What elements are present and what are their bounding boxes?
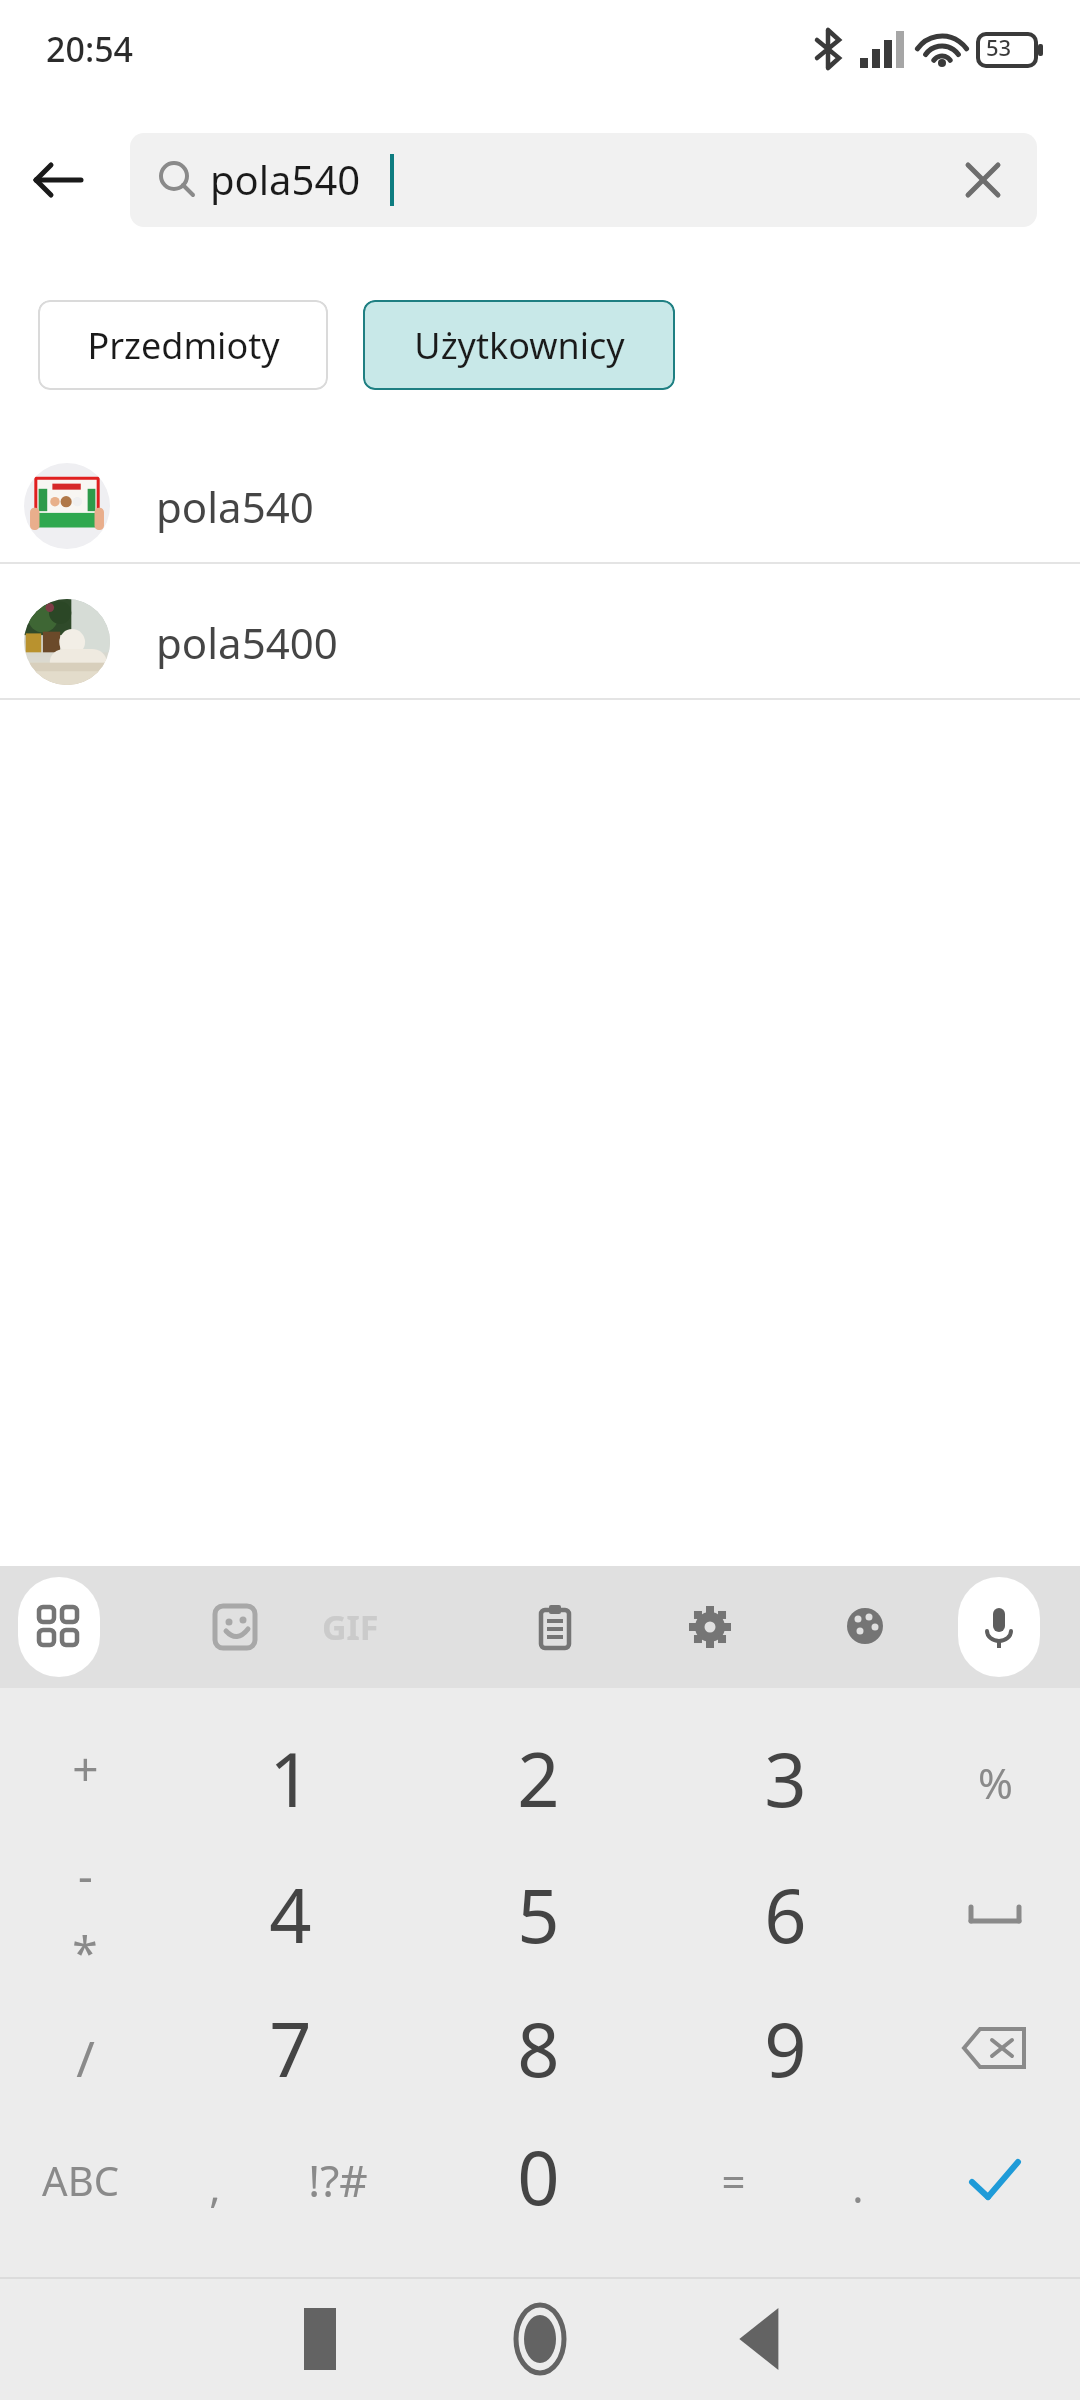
button[interactable]: Recents bbox=[250, 2297, 390, 2381]
button[interactable]: . bbox=[768, 2126, 948, 2246]
staticText: Użytkownicy bbox=[414, 321, 625, 370]
button[interactable]: pola540 bbox=[130, 133, 1037, 227]
staticText: 7 bbox=[269, 1998, 312, 2099]
staticText: 20:54 bbox=[46, 26, 134, 72]
button[interactable]: Keyboard apps bbox=[18, 1577, 100, 1677]
button[interactable]: 2 bbox=[448, 1718, 628, 1838]
button[interactable]: Clear bbox=[943, 140, 1023, 220]
staticText: 9 bbox=[764, 1998, 807, 2099]
staticText: pola540 bbox=[156, 478, 314, 535]
button[interactable]: , bbox=[125, 2126, 305, 2246]
button[interactable]: = bbox=[643, 2120, 823, 2240]
button[interactable]: Home bbox=[470, 2297, 610, 2381]
button[interactable]: Back bbox=[690, 2297, 830, 2381]
staticText: 0 bbox=[517, 2126, 560, 2227]
staticText: 4 bbox=[269, 1864, 312, 1965]
button[interactable]: 7 bbox=[200, 1988, 380, 2108]
staticText: 6 bbox=[764, 1864, 807, 1965]
staticText: = bbox=[721, 2152, 746, 2209]
button[interactable]: 8 bbox=[448, 1988, 628, 2108]
staticText: pola5400 bbox=[156, 614, 338, 671]
button[interactable]: Voice input bbox=[958, 1577, 1040, 1677]
staticText: 8 bbox=[517, 1998, 560, 2099]
button[interactable]: Przedmioty bbox=[38, 300, 328, 390]
button[interactable]: 9 bbox=[695, 1988, 875, 2108]
button[interactable]: 1 bbox=[200, 1718, 380, 1838]
button[interactable]: % bbox=[905, 1722, 1080, 1842]
staticText: + bbox=[72, 1737, 99, 1800]
button[interactable]: + bbox=[0, 1708, 175, 1828]
button[interactable]: / bbox=[0, 1998, 175, 2118]
button[interactable]: 0 bbox=[448, 2116, 628, 2236]
button[interactable]: Backspace bbox=[940, 2003, 1050, 2093]
button[interactable]: Settings bbox=[660, 1577, 760, 1677]
button[interactable]: !?# bbox=[248, 2120, 428, 2240]
staticText: % bbox=[978, 1754, 1013, 1811]
staticText: . bbox=[852, 2158, 864, 2215]
button[interactable]: 5 bbox=[448, 1854, 628, 1974]
staticText: !?# bbox=[308, 2150, 368, 2210]
staticText: / bbox=[76, 2024, 95, 2092]
staticText: pola540 bbox=[210, 152, 361, 206]
button[interactable]: Stickers bbox=[185, 1577, 285, 1677]
button[interactable]: - bbox=[0, 1814, 175, 1934]
button[interactable]: Back bbox=[10, 132, 106, 228]
button[interactable]: ABC bbox=[0, 2120, 170, 2240]
staticText: * bbox=[72, 1921, 98, 1984]
staticText: ABC bbox=[42, 2153, 119, 2207]
staticText: 2 bbox=[517, 1728, 560, 1829]
staticText: 5 bbox=[517, 1864, 560, 1965]
button[interactable]: Clipboard bbox=[505, 1577, 605, 1677]
staticText: - bbox=[78, 1843, 93, 1906]
staticText: 1 bbox=[269, 1728, 312, 1829]
button[interactable]: * bbox=[0, 1892, 175, 2012]
button[interactable]: Enter bbox=[940, 2135, 1050, 2225]
staticText: GIF bbox=[322, 1604, 379, 1650]
button[interactable]: GIF bbox=[300, 1577, 400, 1677]
button[interactable]: pola5400 bbox=[0, 586, 1080, 698]
button[interactable]: Theme bbox=[815, 1577, 915, 1677]
staticText: 53 bbox=[986, 32, 1012, 62]
staticText: Przedmioty bbox=[87, 321, 280, 370]
staticText: 3 bbox=[764, 1728, 807, 1829]
button[interactable]: 4 bbox=[200, 1854, 380, 1974]
button[interactable]: 3 bbox=[695, 1718, 875, 1838]
button[interactable]: Space bbox=[945, 1872, 1045, 1952]
button[interactable]: Użytkownicy bbox=[363, 300, 675, 390]
button[interactable]: pola540 bbox=[0, 450, 1080, 562]
button[interactable]: 6 bbox=[695, 1854, 875, 1974]
staticText: , bbox=[209, 2158, 221, 2215]
